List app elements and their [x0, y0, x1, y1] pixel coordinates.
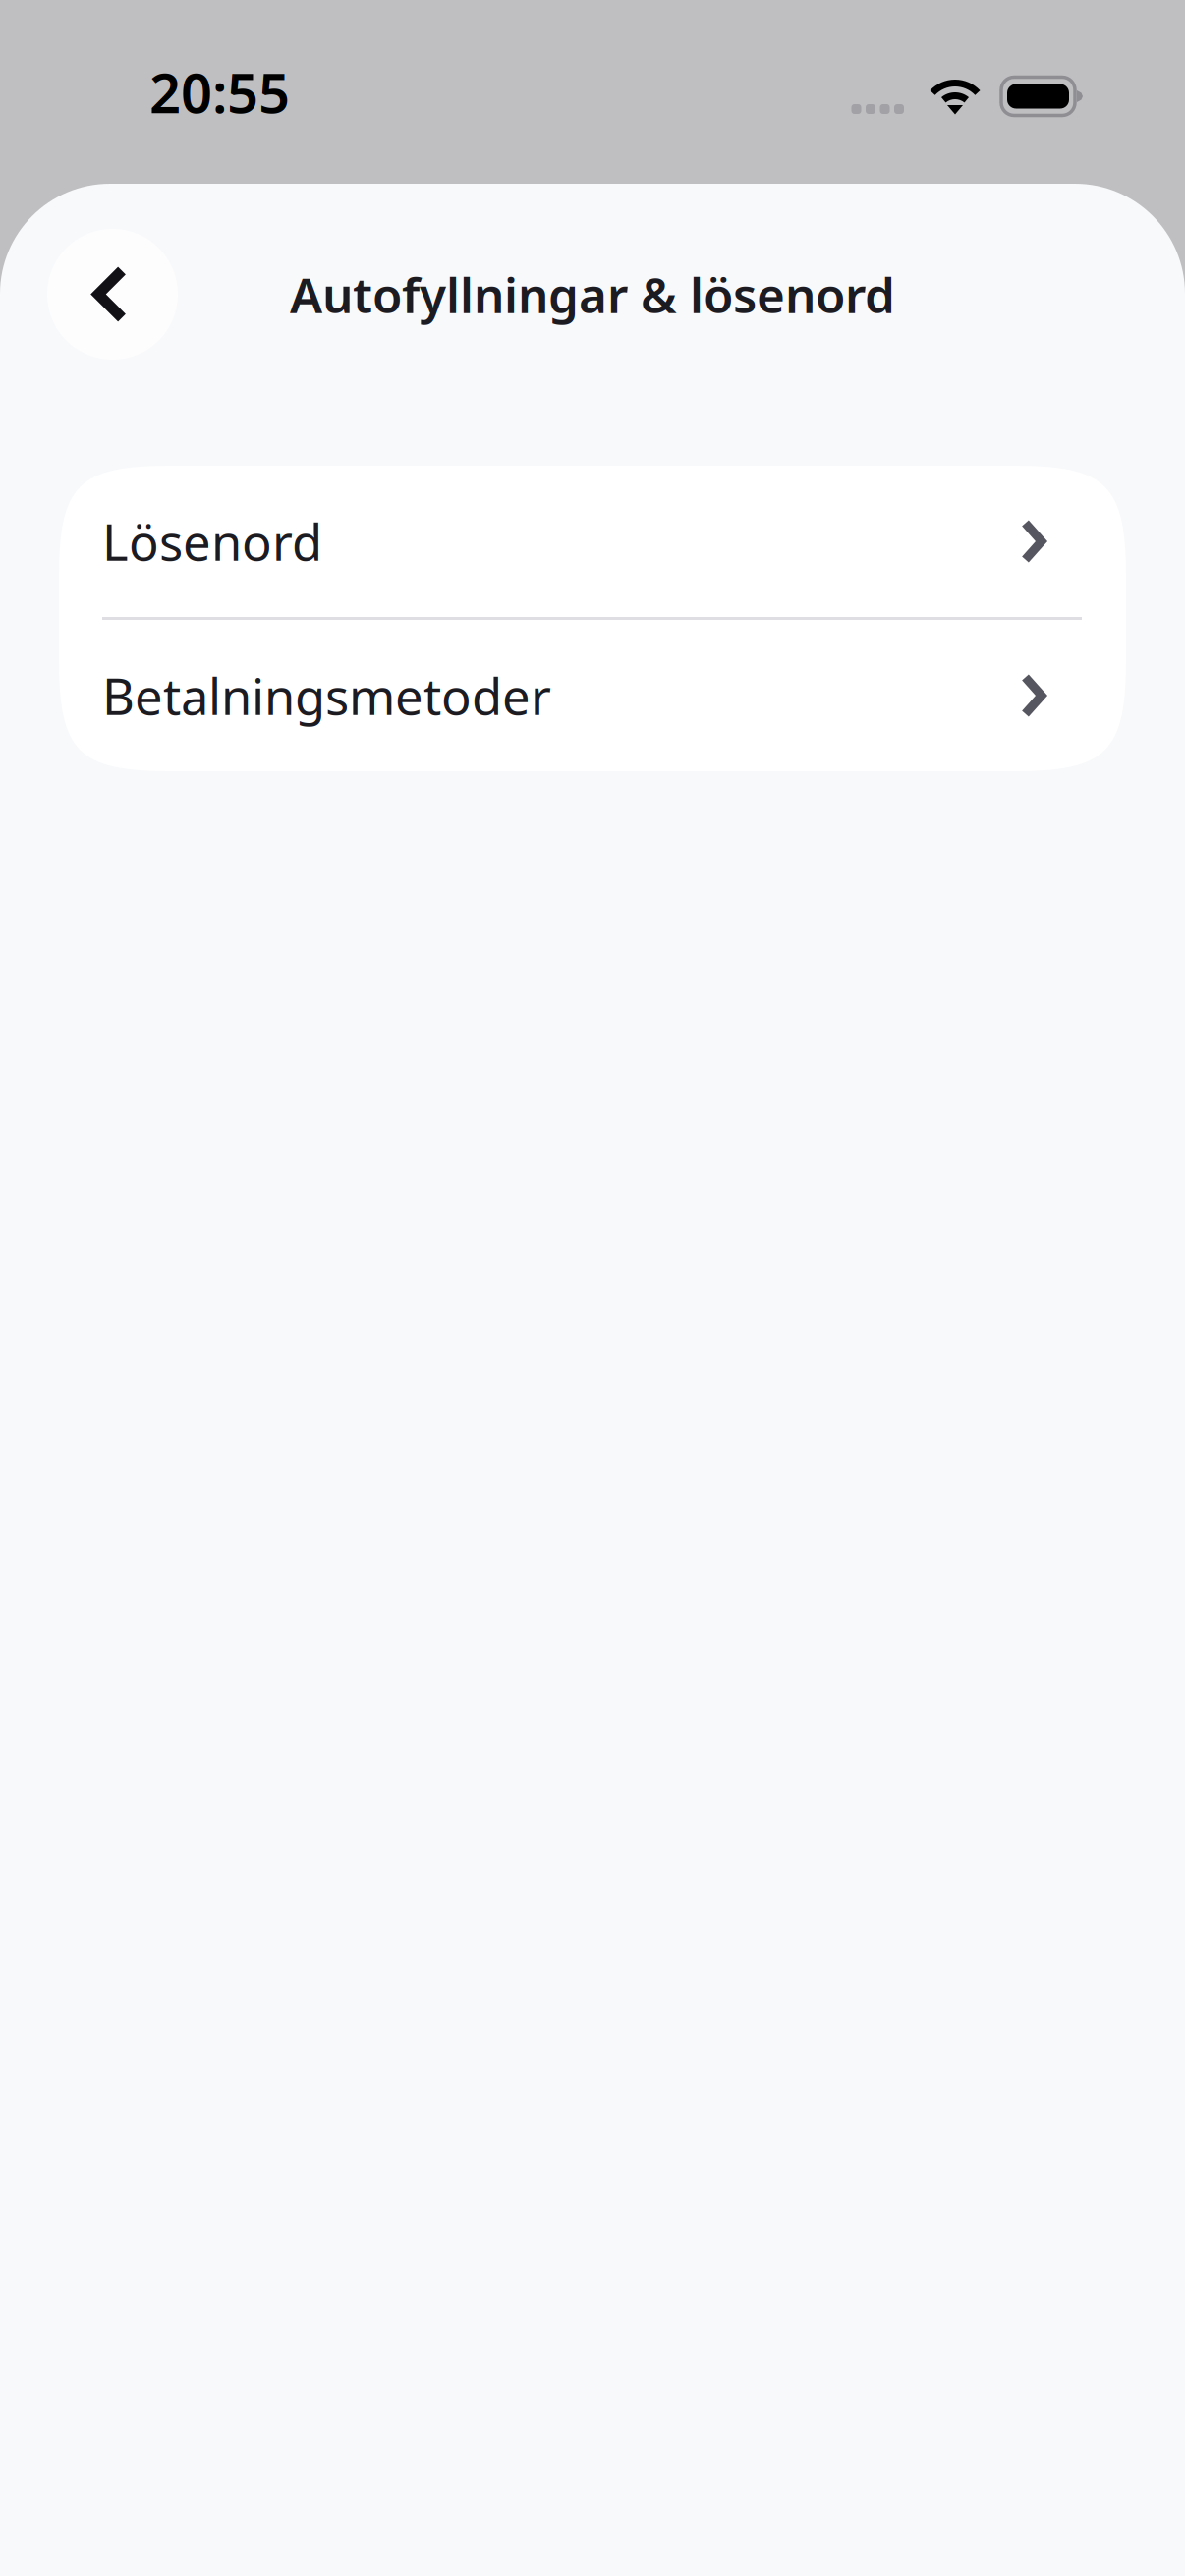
staticText: Autofyllningar & lösenord	[290, 262, 895, 326]
button[interactable]: Betalningsmetoder	[59, 620, 1126, 771]
button[interactable]: Back	[47, 229, 178, 360]
staticText: 20:55	[149, 55, 290, 128]
staticText: Betalningsmetoder	[102, 663, 551, 729]
staticText: Lösenord	[102, 508, 322, 574]
button[interactable]: Lösenord	[59, 466, 1126, 617]
